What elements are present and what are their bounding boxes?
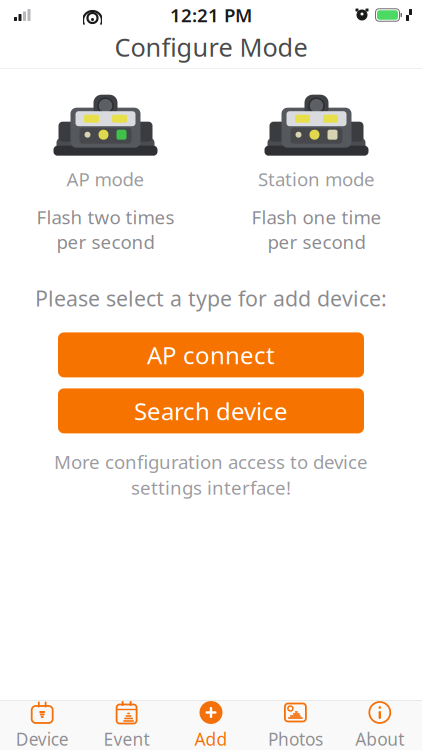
staticText: per second bbox=[56, 229, 154, 254]
staticText: settings interface! bbox=[131, 475, 291, 500]
staticText: Station mode bbox=[258, 167, 375, 191]
staticText: per second bbox=[267, 229, 365, 254]
button[interactable]: About bbox=[338, 701, 422, 750]
staticText: About bbox=[355, 727, 404, 750]
staticText: Device bbox=[16, 727, 69, 750]
button[interactable]: AP connect bbox=[58, 332, 364, 377]
staticText: Add bbox=[194, 727, 227, 750]
button[interactable]: Device bbox=[0, 701, 84, 750]
staticText: AP mode bbox=[66, 167, 144, 191]
button[interactable]: Add bbox=[169, 701, 253, 750]
button[interactable]: Event bbox=[84, 701, 169, 750]
button[interactable]: Search device bbox=[58, 388, 364, 433]
staticText: Flash two times bbox=[36, 204, 174, 229]
staticText: 12:21 PM bbox=[170, 3, 252, 27]
staticText: More configuration access to device bbox=[54, 449, 368, 474]
staticText: Please select a type for add device: bbox=[35, 284, 387, 312]
staticText: Photos bbox=[268, 727, 323, 750]
staticText: Event bbox=[104, 727, 150, 750]
staticText: Configure Mode bbox=[114, 30, 307, 64]
staticText: AP connect bbox=[147, 339, 275, 371]
button[interactable]: Photos bbox=[253, 701, 338, 750]
staticText: Search device bbox=[134, 395, 288, 427]
staticText: Flash one time bbox=[251, 204, 381, 229]
